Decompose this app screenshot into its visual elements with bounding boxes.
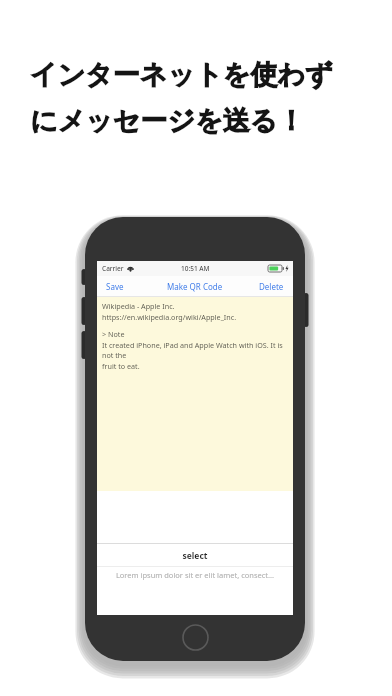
button[interactable]: Wikipedia - Apple Inc. [97,297,293,491]
staticText: Wikipedia - Apple Inc. [102,301,175,311]
staticText: Make QR Code [167,281,223,292]
staticText: Carrier [102,264,124,273]
staticText: fruit to eat. [102,361,140,371]
button[interactable]: Save [97,277,133,296]
staticText: Delete [259,281,284,292]
staticText: 10:51 AM [181,264,210,273]
staticText: にメッセージを送る！ [30,104,305,138]
staticText: インターネットを使わず [30,58,333,92]
staticText: Save [106,281,124,292]
staticText: select [97,550,293,562]
button[interactable]: Delete [250,277,293,296]
staticText: > Note [102,329,125,339]
button[interactable]: Make QR Code [158,277,232,296]
staticText: https://en.wikipedia.org/wiki/Apple_Inc. [102,312,237,322]
staticText: Lorem ipsum dolor sit er elit lamet, con… [97,570,293,580]
staticText: It created iPhone, iPad and Apple Watch … [102,340,288,360]
